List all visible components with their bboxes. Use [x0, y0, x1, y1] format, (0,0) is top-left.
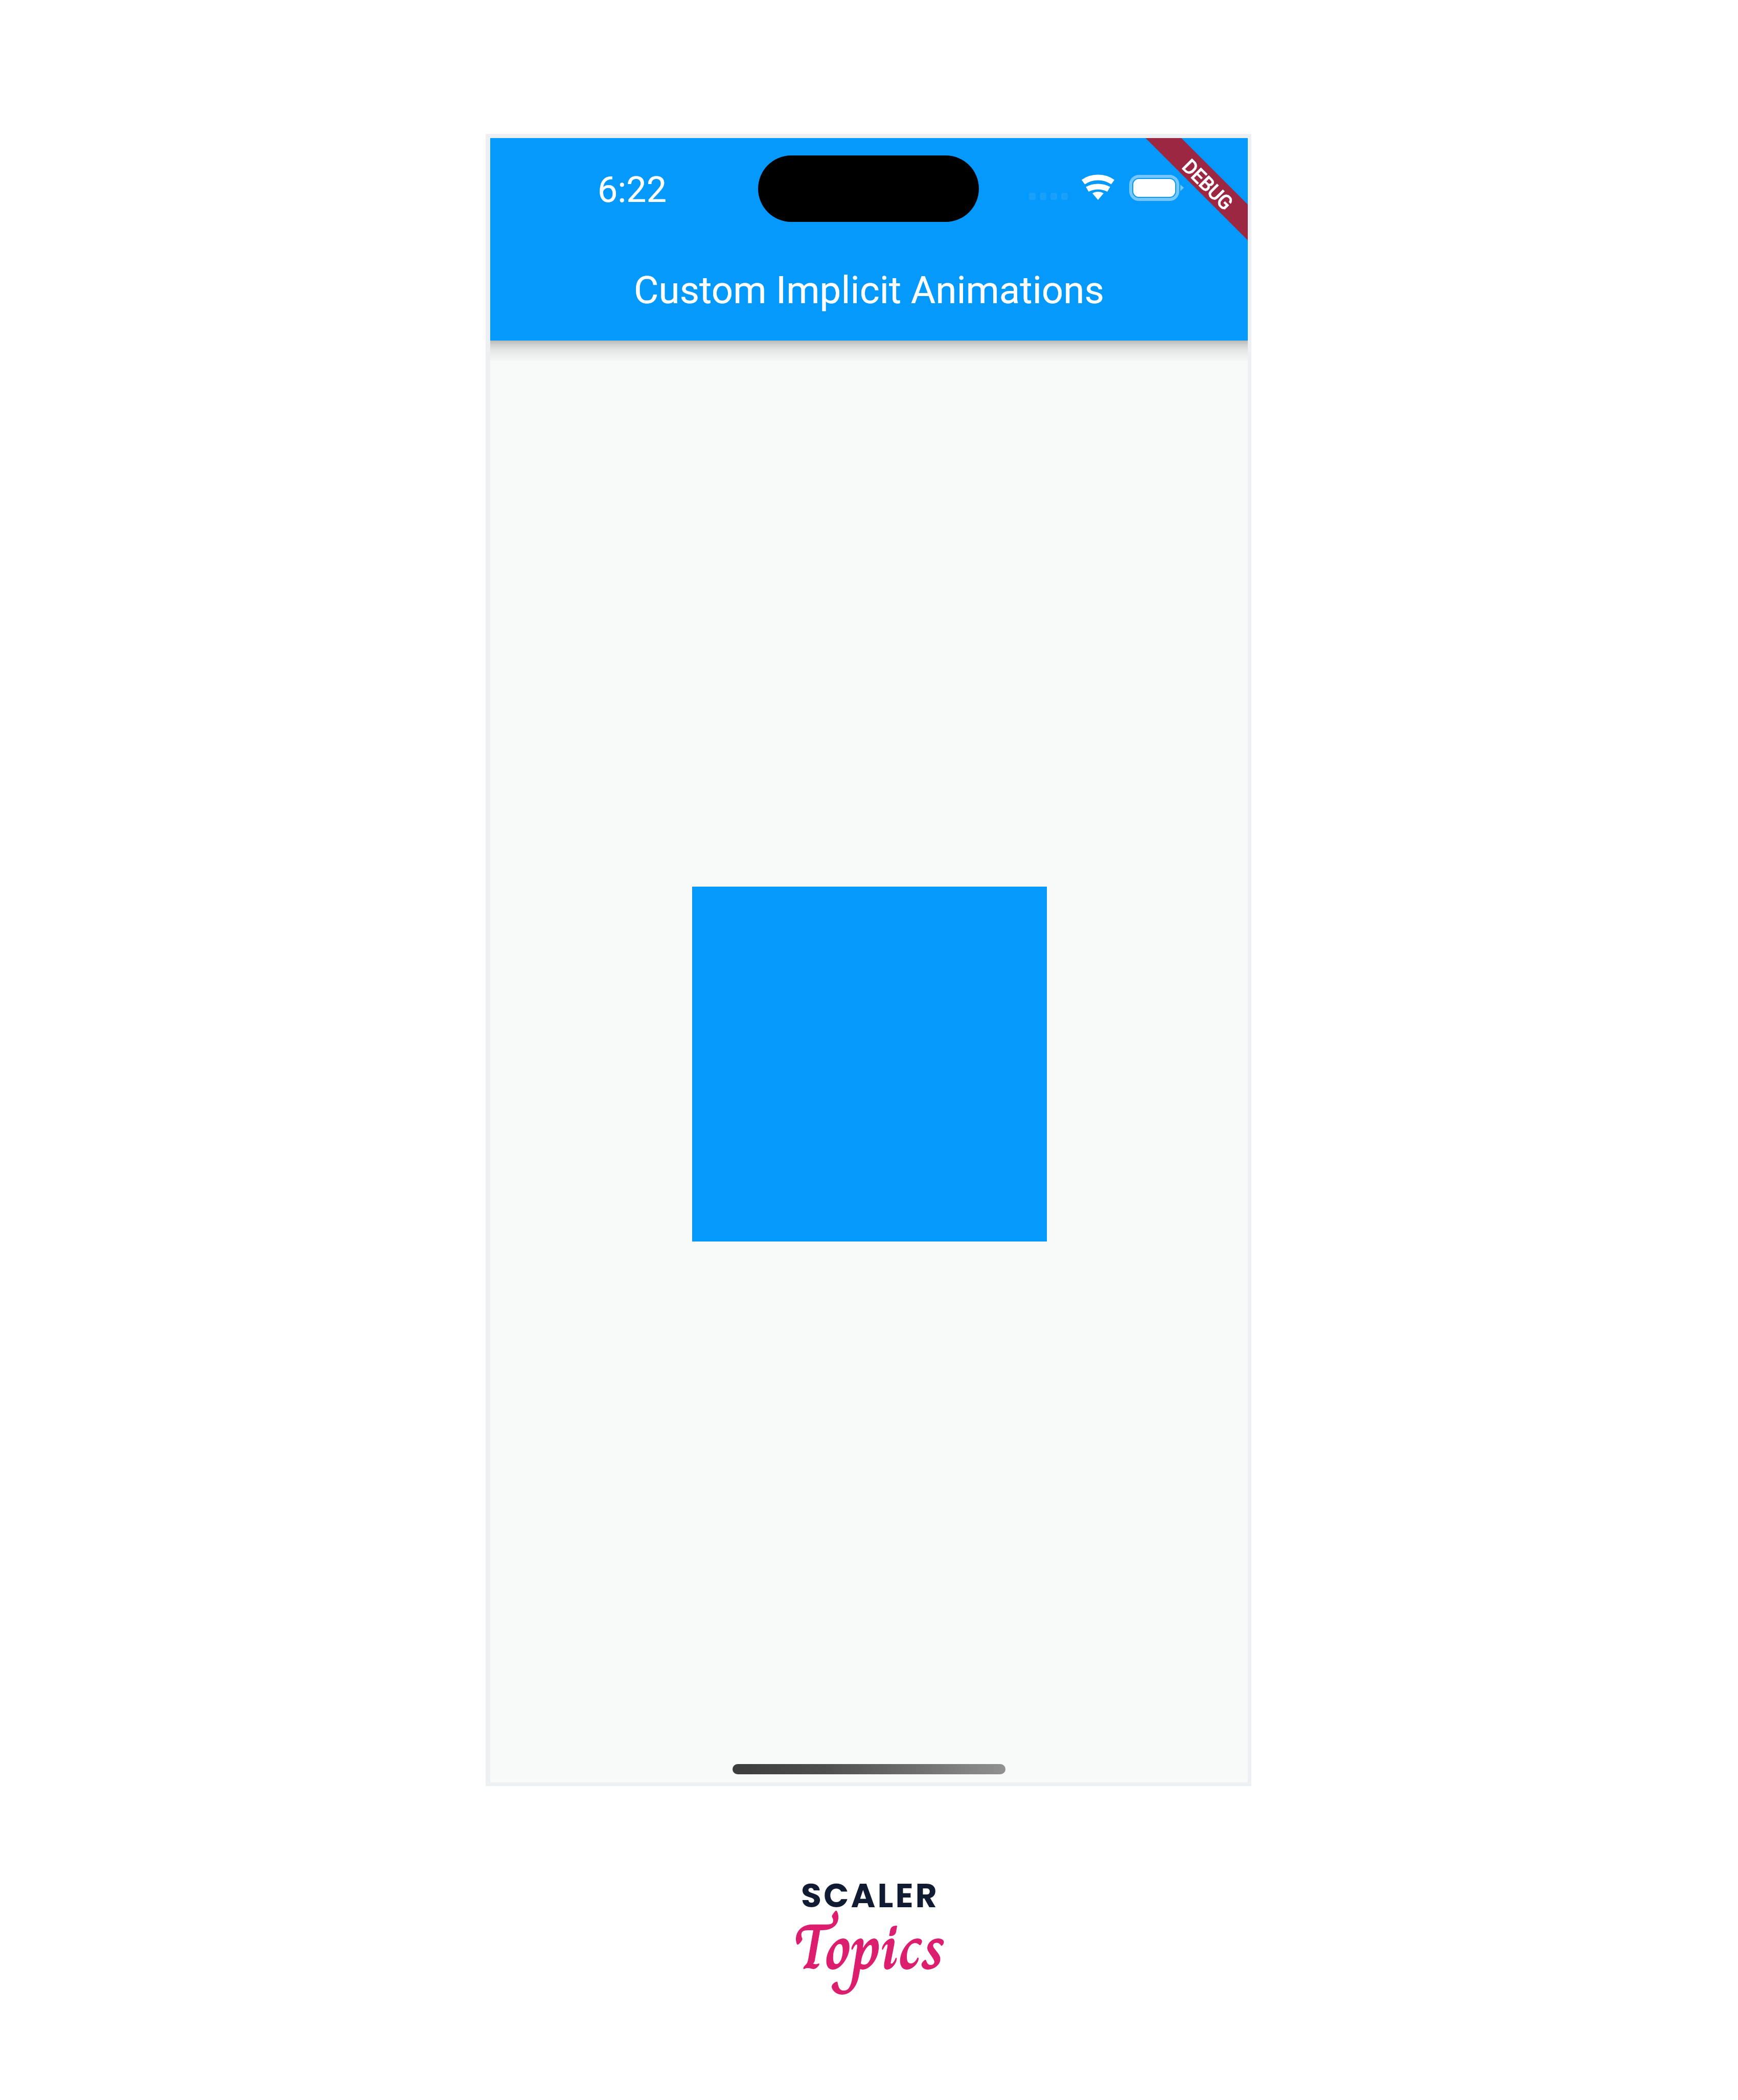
button[interactable]: SCALER: [639, 1866, 1099, 2040]
other: Debug build banner: [1115, 138, 1248, 271]
staticText: DEBUG: [1177, 155, 1237, 215]
staticText: Custom Implicit Animations: [634, 268, 1104, 312]
button[interactable]: Animated blue square: [692, 887, 1047, 1241]
button[interactable]: 6:22: [490, 138, 1248, 341]
other: Cellular signal, Wi-Fi and battery statu…: [1025, 172, 1188, 204]
staticText: 6:22: [598, 169, 667, 211]
staticText: SCALER: [801, 1872, 939, 1919]
staticText: Topics: [793, 1898, 946, 1997]
